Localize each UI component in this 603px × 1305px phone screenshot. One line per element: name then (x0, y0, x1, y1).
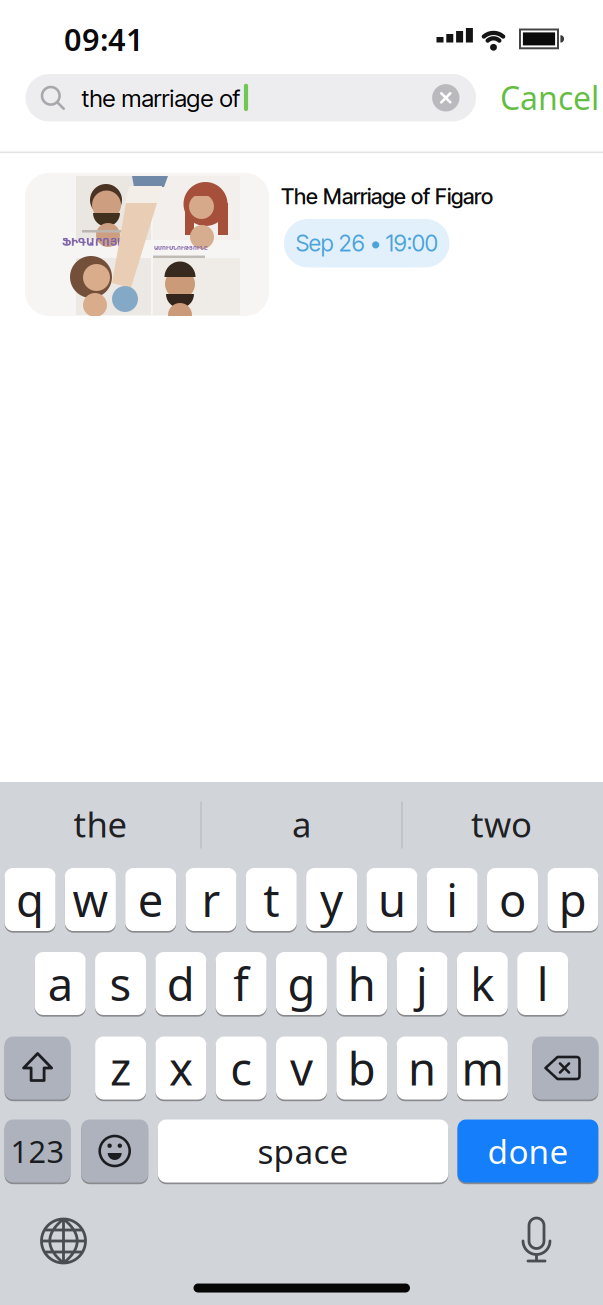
staticText: 123 (10, 1131, 64, 1171)
staticText: Cancel (500, 76, 599, 119)
staticText: z (110, 1038, 131, 1098)
button[interactable]: c (216, 1035, 267, 1100)
button[interactable]: Clear text (432, 84, 459, 111)
button[interactable]: w (65, 867, 116, 932)
button[interactable]: k (457, 951, 508, 1016)
staticText: u (378, 869, 406, 930)
button[interactable]: done (457, 1118, 598, 1183)
staticText: 09:41 (64, 19, 144, 59)
staticText: g (287, 953, 315, 1014)
staticText: two (471, 801, 532, 847)
staticText: space (258, 1129, 349, 1173)
button[interactable]: y (306, 867, 357, 932)
staticText: k (470, 953, 494, 1014)
button[interactable]: q (5, 867, 56, 932)
staticText: x (169, 1038, 193, 1098)
button[interactable]: Cancel (479, 67, 599, 127)
staticText: e (138, 869, 164, 930)
button[interactable]: d (155, 951, 206, 1016)
staticText: l (537, 953, 549, 1014)
button[interactable]: the marriage of (25, 74, 476, 121)
staticText: The Marriage of Figaro (281, 183, 493, 209)
button[interactable]: m (457, 1035, 508, 1100)
button[interactable]: r (185, 867, 236, 932)
button[interactable]: x (155, 1035, 206, 1100)
button[interactable]: Emoji (81, 1118, 148, 1183)
button[interactable]: t (246, 867, 297, 932)
button[interactable]: a (35, 951, 86, 1016)
staticText: y (320, 869, 343, 930)
button[interactable]: l (517, 951, 568, 1016)
staticText: h (348, 953, 376, 1014)
button[interactable]: u (366, 867, 417, 932)
button[interactable]: f (216, 951, 267, 1016)
staticText: o (499, 869, 526, 930)
staticText: s (109, 953, 131, 1014)
button[interactable]: s (95, 951, 146, 1016)
button[interactable]: g (276, 951, 327, 1016)
button[interactable]: h (336, 951, 387, 1016)
staticText: Sep 26 • 19:00 (296, 229, 438, 257)
button[interactable]: Delete (532, 1035, 598, 1100)
staticText: v (290, 1038, 313, 1098)
staticText: b (348, 1038, 376, 1098)
staticText: q (16, 869, 44, 930)
button[interactable]: Shift (5, 1035, 70, 1100)
staticText: a (48, 953, 73, 1014)
button[interactable]: o (487, 867, 538, 932)
button[interactable]: e (125, 867, 176, 932)
button[interactable]: n (397, 1035, 448, 1100)
staticText: r (201, 869, 220, 930)
staticText: p (559, 869, 587, 930)
staticText: the (73, 801, 127, 847)
staticText: f (233, 953, 249, 1014)
staticText: a (292, 801, 311, 847)
button[interactable]: the (10, 794, 190, 854)
button[interactable]: two (411, 794, 591, 854)
staticText: t (263, 869, 279, 930)
staticText: done (487, 1129, 568, 1173)
staticText: n (408, 1038, 436, 1098)
button[interactable]: Dictation (511, 1213, 561, 1269)
button[interactable]: p (547, 867, 598, 932)
staticText: w (72, 869, 108, 930)
staticText: m (461, 1038, 503, 1098)
staticText: d (167, 953, 195, 1014)
staticText: c (230, 1038, 252, 1098)
button[interactable]: space (158, 1118, 448, 1183)
button[interactable]: i (427, 867, 478, 932)
staticText: the marriage of (81, 84, 240, 113)
button[interactable]: 123 (5, 1118, 70, 1183)
button[interactable]: Next keyboard (38, 1216, 88, 1266)
button[interactable]: ՖԻԳԱՐՈՅԻ (25, 173, 578, 316)
staticText: i (446, 869, 458, 930)
button[interactable]: a (211, 794, 391, 854)
button[interactable]: j (396, 951, 447, 1016)
staticText: j (416, 953, 428, 1014)
staticText: ԱՄՈՒՍՆՈՒԹՅՈՒՆԸ (154, 245, 208, 251)
button[interactable]: b (336, 1035, 387, 1100)
button[interactable]: z (95, 1035, 146, 1100)
staticText: ՖԻԳԱՐՈՅԻ (62, 236, 124, 248)
button[interactable]: v (276, 1035, 327, 1100)
